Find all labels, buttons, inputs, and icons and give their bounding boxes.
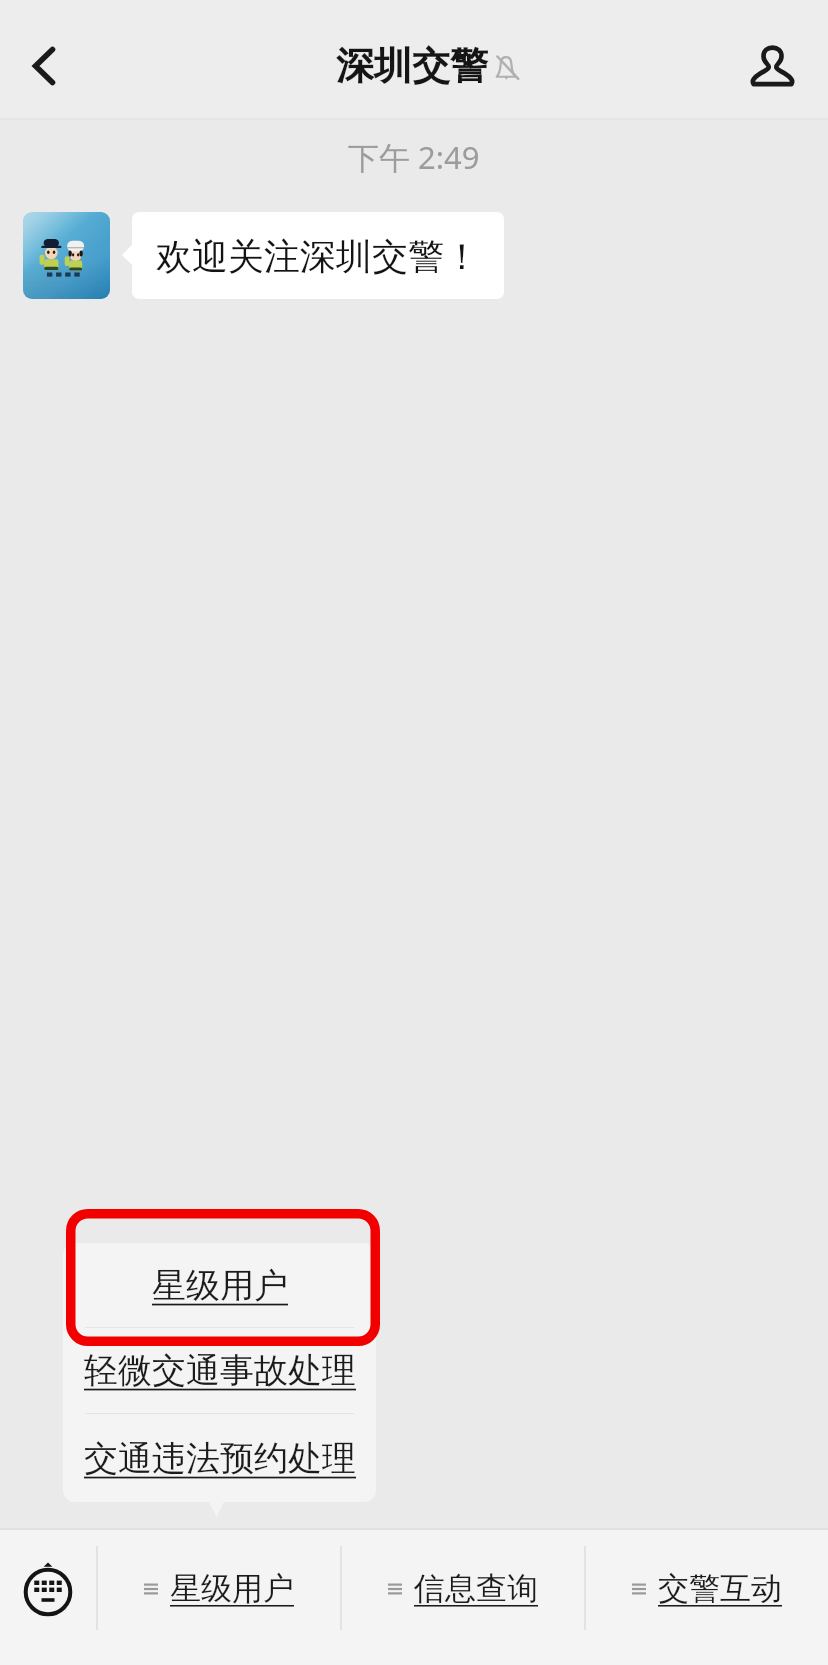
staticText: 星级用户 <box>170 1569 294 1608</box>
staticText: 交通违法预约处理 <box>84 1437 356 1480</box>
button[interactable]: 星级用户 <box>63 1243 376 1327</box>
button[interactable]: 轻微交通事故处理 <box>63 1328 376 1413</box>
button[interactable]: 信息查询 <box>342 1530 584 1665</box>
staticText: 轻微交通事故处理 <box>84 1349 356 1392</box>
staticText: 信息查询 <box>414 1569 538 1608</box>
staticText: 欢迎关注深圳交警！ <box>156 234 480 279</box>
staticText: 交警互动 <box>658 1569 782 1608</box>
button[interactable]: Official account avatar <box>23 212 110 299</box>
button[interactable]: Back <box>0 0 96 120</box>
staticText: 星级用户 <box>152 1264 288 1307</box>
staticText: 下午 2:49 <box>348 136 480 178</box>
button[interactable]: Show keyboard <box>0 1530 96 1665</box>
button[interactable]: 交警互动 <box>586 1530 828 1665</box>
button[interactable]: Contact profile <box>718 0 828 120</box>
staticText: 深圳交警 <box>336 42 488 90</box>
button[interactable]: 欢迎关注深圳交警！ <box>132 212 504 299</box>
button[interactable]: 交通违法预约处理 <box>63 1414 376 1502</box>
button[interactable]: 星级用户 <box>98 1530 340 1665</box>
